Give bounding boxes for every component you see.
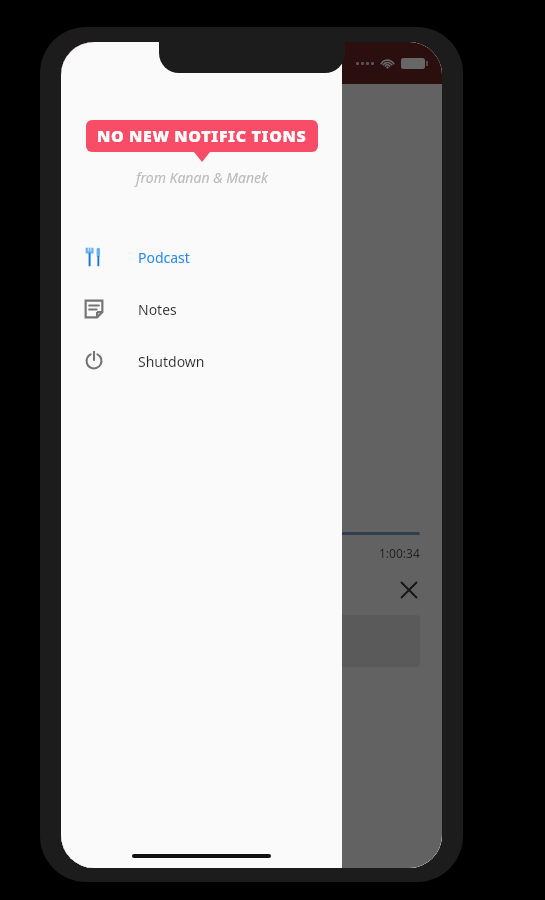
other: Shutdown xyxy=(83,350,105,372)
button[interactable]: Notes xyxy=(61,283,342,335)
staticText: Podcast xyxy=(138,248,190,267)
button[interactable]: Podcast xyxy=(61,231,342,283)
staticText: Shutdown xyxy=(138,352,205,371)
staticText: from Kanan & Manek xyxy=(136,168,268,187)
other: Notes xyxy=(83,298,105,320)
other: Podcast xyxy=(83,246,105,268)
button[interactable]: Shutdown xyxy=(61,335,342,387)
staticText: Something with Kanan & xyxy=(83,360,285,383)
staticText: 1:00:34 xyxy=(379,545,420,561)
staticText: Notes xyxy=(138,300,177,319)
staticText: NO NEW NOTIFIC TIONS xyxy=(97,125,307,147)
